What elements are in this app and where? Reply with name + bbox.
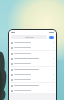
button[interactable] <box>9 67 56 72</box>
button[interactable] <box>9 51 56 56</box>
button[interactable]: Account <box>49 36 54 39</box>
button[interactable] <box>9 56 56 61</box>
button[interactable] <box>9 77 56 82</box>
button[interactable] <box>9 40 56 45</box>
button[interactable]: Search <box>11 35 47 39</box>
button[interactable] <box>9 88 56 93</box>
button[interactable] <box>9 72 56 77</box>
button[interactable] <box>9 61 56 66</box>
button[interactable] <box>9 45 56 50</box>
button[interactable] <box>9 83 56 88</box>
